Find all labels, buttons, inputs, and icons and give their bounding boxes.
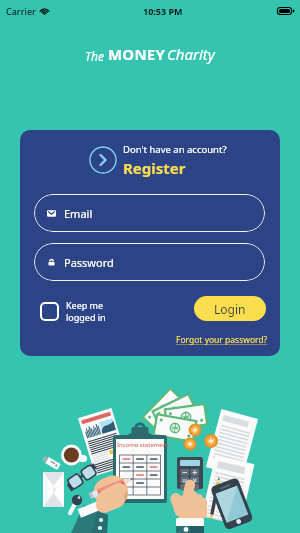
- staticText: 10:53 PM: [143, 5, 183, 17]
- staticText: MONEY: [108, 44, 165, 64]
- button[interactable]: Keep me: [40, 299, 106, 323]
- staticText: Income statement: [117, 441, 169, 449]
- button[interactable]: Register: [123, 158, 186, 178]
- staticText: Keep me: [66, 299, 104, 311]
- staticText: logged in: [66, 311, 106, 323]
- staticText: Carrier: [6, 5, 36, 17]
- button[interactable]: Login: [194, 296, 266, 321]
- staticText: The: [85, 48, 104, 64]
- staticText: Register: [123, 158, 186, 178]
- button[interactable]: Register: [89, 146, 117, 174]
- staticText: Login: [214, 301, 246, 317]
- staticText: Forgot your password?: [176, 334, 268, 346]
- button[interactable]: Email: [34, 194, 265, 232]
- button[interactable]: Password: [34, 243, 265, 281]
- staticText: Don't have an account?: [123, 143, 227, 156]
- staticText: Charity: [167, 44, 215, 64]
- button[interactable]: Forgot your password?: [176, 334, 268, 346]
- staticText: Email: [64, 206, 93, 221]
- staticText: Password: [64, 255, 114, 270]
